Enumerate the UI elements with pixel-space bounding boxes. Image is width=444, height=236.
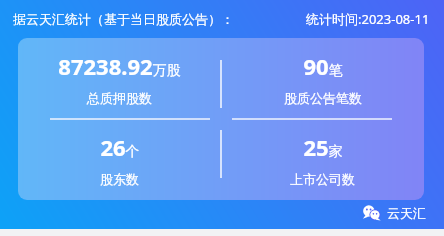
button[interactable]: 26个 xyxy=(18,119,221,200)
staticText: 26个 xyxy=(100,132,140,162)
staticText: 总质押股数 xyxy=(87,90,152,106)
staticText: 25家 xyxy=(303,132,343,162)
staticText: 统计时间:2023-08-11 xyxy=(306,10,430,28)
button[interactable]: 25家 xyxy=(221,119,424,200)
staticText: 股东数 xyxy=(100,171,139,187)
staticText: 云天汇 xyxy=(387,205,426,221)
button[interactable]: 90笔 xyxy=(221,38,424,119)
button[interactable]: 87238.92万股 xyxy=(18,38,221,119)
staticText: 据云天汇统计（基于当日股质公告）： xyxy=(13,11,234,27)
staticText: 股质公告笔数 xyxy=(284,90,362,106)
staticText: 87238.92万股 xyxy=(58,51,181,81)
staticText: 上市公司数 xyxy=(290,171,355,187)
staticText: 90笔 xyxy=(303,51,343,81)
button[interactable]: 云天汇 WeChat xyxy=(360,201,428,224)
